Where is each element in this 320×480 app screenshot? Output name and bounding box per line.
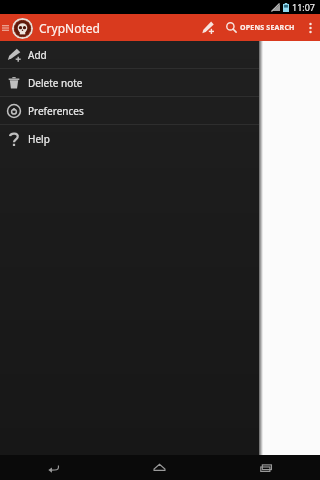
staticText: OPENS SEARCH	[240, 23, 295, 33]
button[interactable]: Back	[0, 455, 106, 480]
button[interactable]: New note	[193, 14, 221, 41]
button[interactable]: Open navigation drawer	[0, 14, 10, 41]
button[interactable]: Home	[106, 455, 213, 480]
staticText: Preferences	[28, 104, 84, 118]
button[interactable]: Recent apps	[213, 455, 320, 480]
staticText: Add	[28, 48, 47, 62]
button[interactable]: Delete note	[0, 69, 259, 96]
button[interactable]: OPENS SEARCH	[221, 14, 300, 41]
staticText: Help	[28, 132, 50, 146]
button[interactable]: Help	[0, 125, 259, 152]
button[interactable]: CrypNoted logo	[10, 16, 34, 40]
staticText: 11:07	[292, 1, 316, 13]
staticText: Delete note	[28, 76, 83, 90]
button[interactable]: Add	[0, 41, 259, 68]
button[interactable]: More options	[300, 14, 320, 41]
button[interactable]: Preferences	[0, 97, 259, 124]
staticText: CrypNoted	[39, 20, 100, 36]
